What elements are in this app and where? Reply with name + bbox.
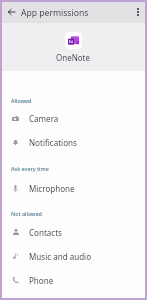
staticText: Microphone (29, 183, 75, 194)
staticText: OneNote (56, 52, 91, 63)
staticText: Music and audio (29, 251, 92, 262)
button[interactable]: More options (130, 2, 145, 23)
staticText: Ask every time (11, 165, 49, 172)
button[interactable]: Music and audio (2, 244, 145, 268)
staticText: Notifications (29, 137, 77, 148)
staticText: Contacts (29, 227, 62, 238)
button[interactable]: Notifications (2, 130, 145, 154)
staticText: App permissions (21, 7, 89, 19)
staticText: Not allowed (11, 210, 42, 217)
button[interactable]: Back (2, 2, 21, 23)
button[interactable]: Camera (2, 106, 145, 130)
button[interactable]: Contacts (2, 220, 145, 244)
button[interactable]: Microphone (2, 176, 145, 200)
staticText: Camera (29, 113, 59, 124)
staticText: Allowed (11, 97, 32, 104)
button[interactable]: Phone (2, 268, 145, 292)
staticText: Phone (29, 275, 54, 286)
